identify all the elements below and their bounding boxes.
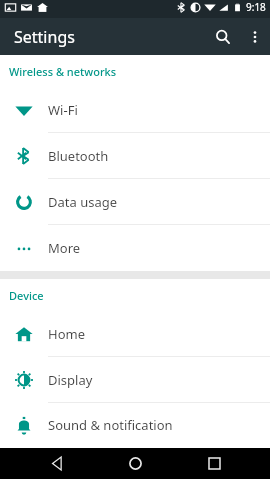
staticText: Wi-Fi — [48, 101, 78, 119]
button[interactable]: Search — [206, 20, 240, 54]
button[interactable]: More options — [240, 22, 270, 52]
button[interactable]: Home — [0, 311, 270, 356]
button[interactable]: More — [0, 225, 270, 271]
staticText: Wireless & networks — [9, 64, 117, 79]
button[interactable]: Bluetooth — [0, 133, 270, 178]
staticText: 9:18 — [246, 0, 266, 14]
staticText: Sound & notification — [48, 416, 173, 434]
button[interactable]: Data usage — [0, 179, 270, 224]
staticText: Device — [9, 288, 44, 303]
button[interactable]: Sound & notification — [0, 403, 270, 447]
button[interactable]: Recent apps — [192, 448, 236, 479]
staticText: Settings — [14, 26, 75, 48]
staticText: Home — [48, 325, 85, 343]
staticText: Data usage — [48, 193, 118, 211]
button[interactable]: Back — [35, 448, 79, 479]
button[interactable]: Display — [0, 357, 270, 402]
staticText: Display — [48, 371, 93, 389]
staticText: Bluetooth — [48, 147, 109, 165]
button[interactable]: Wi-Fi — [0, 87, 270, 132]
staticText: More — [48, 239, 81, 257]
button[interactable]: Home — [113, 448, 157, 479]
